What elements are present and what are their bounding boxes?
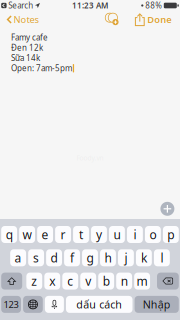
button[interactable]: Done xyxy=(147,11,171,27)
staticText: Notes xyxy=(14,13,39,26)
button[interactable]: k xyxy=(136,249,152,266)
button[interactable]: s xyxy=(28,249,44,266)
staticText: q xyxy=(6,226,13,242)
button[interactable]: Add attachment xyxy=(160,202,174,216)
button[interactable]: v xyxy=(80,273,96,290)
button[interactable]: 123 xyxy=(1,296,21,313)
button[interactable]: n xyxy=(116,273,132,290)
staticText: Sữa 14k xyxy=(11,53,40,63)
button[interactable]: l xyxy=(154,249,170,266)
button[interactable]: dấu cách xyxy=(66,296,132,313)
staticText: 88% xyxy=(145,0,162,11)
button[interactable]: Nhập xyxy=(135,296,179,313)
staticText: Đen 12k xyxy=(11,42,43,53)
button[interactable]: Share xyxy=(135,11,144,27)
staticText: Done xyxy=(147,13,171,26)
staticText: h xyxy=(104,250,111,266)
staticText: t xyxy=(79,226,83,242)
staticText: c xyxy=(67,273,73,289)
staticText: r xyxy=(60,226,65,242)
button[interactable]: e xyxy=(37,226,53,243)
button[interactable]: Delete xyxy=(157,273,179,290)
button[interactable]: u xyxy=(109,226,125,243)
button[interactable]: Next keyboard xyxy=(23,296,43,313)
staticText: Search xyxy=(8,0,33,11)
staticText: o xyxy=(149,226,156,242)
staticText: g xyxy=(86,250,93,266)
button[interactable]: y xyxy=(91,226,107,243)
staticText: Open: 7am-5pm xyxy=(11,63,72,73)
staticText: 11:23 AM xyxy=(72,0,108,11)
button[interactable]: r xyxy=(55,226,71,243)
button[interactable]: x xyxy=(44,273,60,290)
staticText: i xyxy=(133,226,136,242)
staticText: d xyxy=(51,250,58,266)
staticText: dấu cách xyxy=(76,297,122,311)
staticText: n xyxy=(121,273,128,289)
button[interactable]: z xyxy=(26,273,42,290)
staticText: a xyxy=(15,250,22,266)
staticText: j xyxy=(124,250,127,266)
button[interactable]: c xyxy=(62,273,78,290)
staticText: s xyxy=(33,250,39,266)
button[interactable]: Shift xyxy=(1,273,22,290)
button[interactable]: d xyxy=(46,249,62,266)
button[interactable]: o xyxy=(145,226,161,243)
staticText: y xyxy=(96,226,102,242)
button[interactable]: j xyxy=(118,249,134,266)
staticText: Famy cafe xyxy=(11,32,48,43)
button[interactable]: a xyxy=(10,249,26,266)
button[interactable]: Dictate xyxy=(45,296,64,313)
staticText: v xyxy=(85,273,91,289)
staticText: p xyxy=(167,226,174,242)
button[interactable]: t xyxy=(73,226,89,243)
staticText: x xyxy=(49,273,55,289)
button[interactable]: q xyxy=(1,226,17,243)
button[interactable]: Notes xyxy=(2,11,43,27)
staticText: w xyxy=(23,226,32,242)
button[interactable]: w xyxy=(19,226,35,243)
staticText: z xyxy=(31,273,37,289)
staticText: f xyxy=(70,250,74,266)
button[interactable]: b xyxy=(98,273,114,290)
button[interactable]: i xyxy=(127,226,143,243)
button[interactable]: Add People xyxy=(105,11,119,27)
staticText: b xyxy=(103,273,110,289)
staticText: u xyxy=(113,226,120,242)
staticText: e xyxy=(42,226,49,242)
staticText: l xyxy=(160,250,163,266)
staticText: Nhập xyxy=(143,297,171,311)
button[interactable]: m xyxy=(134,273,150,290)
button[interactable]: p xyxy=(163,226,179,243)
button[interactable]: g xyxy=(82,249,98,266)
button[interactable]: h xyxy=(100,249,116,266)
staticText: k xyxy=(141,250,147,266)
staticText: m xyxy=(137,273,148,289)
button[interactable]: f xyxy=(64,249,80,266)
staticText: 123 xyxy=(4,298,19,311)
